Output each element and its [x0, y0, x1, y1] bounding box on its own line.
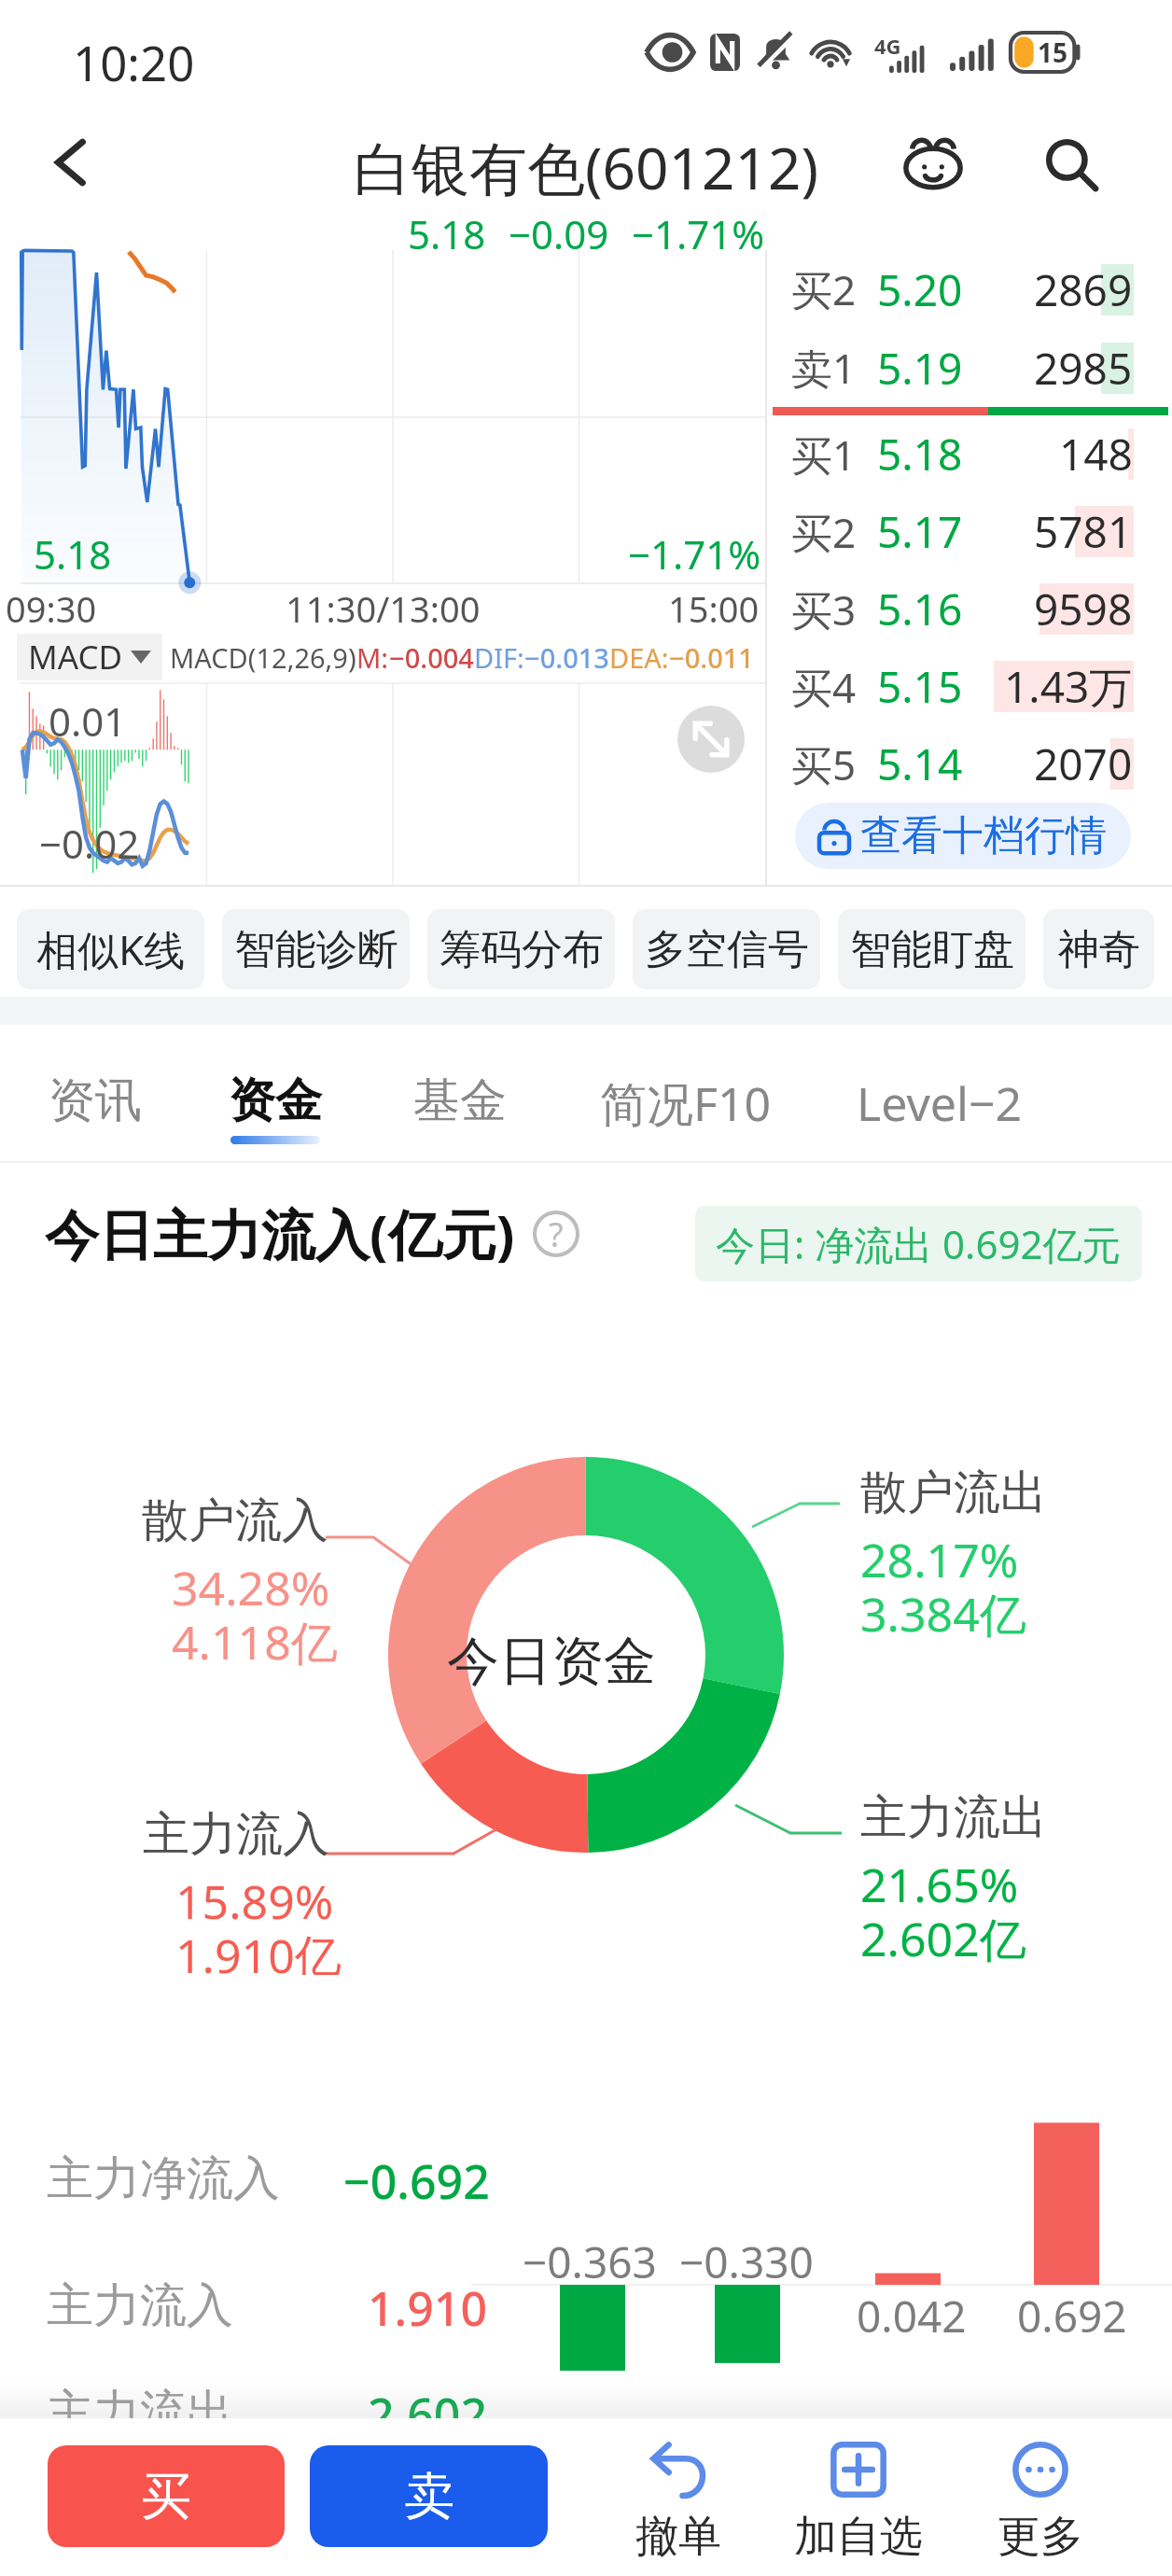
staticText: −0.09 [509, 207, 609, 250]
staticText: 加自选 [794, 2510, 923, 2564]
button[interactable]: 查看十档行情 [795, 803, 1131, 869]
staticText: 0.692 [1017, 2287, 1127, 2345]
staticText: 主力流出 [860, 1788, 1047, 1847]
button[interactable]: 智能诊断 [222, 909, 410, 989]
button[interactable]: Back [24, 114, 121, 211]
staticText: 买1 [791, 427, 857, 483]
staticText: −1.71% [628, 527, 761, 581]
staticText: 撤单 [635, 2510, 721, 2564]
staticText: −0.02 [39, 817, 140, 870]
staticText: −0.004 [389, 639, 474, 676]
staticText: 简况F10 [600, 1071, 772, 1135]
staticText: 今日: 净流出 0.692亿元 [716, 1217, 1122, 1270]
button[interactable]: 资讯 [49, 1071, 142, 1136]
button[interactable]: Fullscreen [677, 706, 745, 773]
button[interactable]: 筹码分布 [427, 909, 615, 989]
button[interactable]: 资金 [229, 1071, 322, 1144]
staticText: 2985 [1034, 339, 1133, 398]
button[interactable]: 加自选 [788, 2435, 928, 2564]
staticText: 5.18 [34, 527, 112, 581]
staticText: 5781 [1034, 502, 1133, 561]
staticText: 基金 [413, 1071, 507, 1130]
staticText: 散户流出 [860, 1463, 1047, 1522]
staticText: 卖1 [791, 340, 857, 396]
staticText: 5.17 [877, 502, 963, 561]
staticText: 28.17% 3.384亿 [860, 1528, 1026, 1645]
staticText: 5.19 [877, 339, 963, 398]
staticText: 09:30 [6, 584, 97, 631]
staticText: 主力净流入 [47, 2149, 280, 2208]
staticText: 资讯 [49, 1071, 142, 1130]
staticText: −0.011 [669, 639, 754, 676]
staticText: 智能诊断 [234, 924, 398, 975]
staticText: 5.20 [877, 260, 963, 319]
staticText: 15.89% 1.910亿 [175, 1869, 342, 1975]
button[interactable]: 智能盯盘 [838, 909, 1025, 989]
staticText: 1.910 [368, 2276, 487, 2340]
staticText: −0.363 [523, 2233, 657, 2291]
staticText: 2869 [1034, 260, 1133, 319]
staticText: 主力流入 [143, 1805, 329, 1864]
button[interactable]: 更多 [970, 2435, 1110, 2564]
staticText: 白银有色(601212) [354, 128, 818, 207]
staticText: 资金 [229, 1071, 322, 1130]
staticText: 34.28% 4.118亿 [172, 1556, 338, 1673]
button[interactable]: 买2 [767, 250, 1172, 329]
button[interactable]: 基金 [413, 1071, 507, 1136]
button[interactable]: 买3 [767, 570, 1172, 648]
staticText: 5.18 [408, 207, 486, 250]
button[interactable]: 相似K线 [17, 909, 204, 989]
button[interactable]: 今日: 净流出 0.692亿元 [695, 1206, 1142, 1281]
button[interactable]: 卖1 [767, 329, 1172, 407]
staticText: 10:20 [73, 30, 195, 94]
staticText: 买3 [791, 581, 857, 637]
staticText: 买2 [791, 504, 857, 560]
staticText: 主力流入 [47, 2276, 233, 2335]
staticText: 买4 [791, 659, 857, 715]
staticText: 更多 [998, 2510, 1083, 2564]
button[interactable]: Assistant [886, 118, 980, 211]
button[interactable]: Search [1025, 118, 1118, 211]
staticText: DEA: [609, 639, 669, 676]
button[interactable]: Level−2 [857, 1071, 1023, 1141]
button[interactable]: Help [530, 1208, 582, 1260]
staticText: 5.16 [877, 580, 963, 638]
staticText: 0.01 [49, 694, 127, 748]
staticText: 2070 [1034, 735, 1133, 793]
staticText: 4G [874, 32, 901, 60]
button[interactable]: MACD [17, 634, 162, 680]
button[interactable]: 买1 [767, 415, 1172, 493]
button[interactable]: 买5 [767, 725, 1172, 803]
staticText: MACD(12,26,9) [170, 639, 356, 676]
button[interactable]: 买 [48, 2445, 285, 2547]
staticText: 148 [1059, 425, 1133, 483]
staticText: −0.330 [679, 2233, 814, 2291]
staticText: 主力流出 [47, 2383, 233, 2418]
staticText: 今日资金 [447, 1629, 656, 1695]
staticText: Level−2 [857, 1071, 1023, 1135]
button[interactable]: 简况F10 [600, 1071, 772, 1141]
staticText: 买5 [791, 736, 857, 792]
staticText: −0.013 [524, 639, 609, 676]
staticText: 今日主力流入(亿元) [45, 1197, 515, 1270]
staticText: 15 [1038, 35, 1068, 70]
staticText: 多空信号 [645, 924, 809, 975]
button[interactable]: 多空信号 [633, 909, 820, 989]
staticText: −1.71% [632, 207, 765, 250]
button[interactable]: 买4 [767, 648, 1172, 725]
staticText: 2.602 [368, 2383, 487, 2418]
staticText: 筹码分布 [439, 924, 604, 975]
button[interactable]: 撤单 [608, 2435, 748, 2564]
button[interactable]: 买2 [767, 493, 1172, 570]
button[interactable]: 卖 [310, 2445, 548, 2547]
staticText: 神奇 [1058, 924, 1140, 975]
staticText: 5.18 [877, 425, 963, 483]
staticText: 11:30/13:00 [286, 584, 481, 631]
staticText: 买2 [791, 261, 857, 317]
staticText: M: [356, 639, 389, 676]
staticText: 买 [141, 2465, 191, 2528]
staticText: 0.042 [857, 2287, 967, 2345]
staticText: 散户流入 [142, 1491, 328, 1550]
button[interactable]: 神奇 [1043, 909, 1154, 989]
staticText: 5.15 [877, 657, 963, 716]
